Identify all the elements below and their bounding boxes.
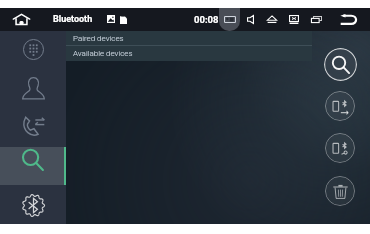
button[interactable]: Paired devices [66,31,312,45]
button[interactable]: Eject [267,15,277,24]
button[interactable]: Home [13,14,30,25]
button[interactable]: Recent apps [311,16,322,23]
button[interactable]: Call history [0,109,66,141]
button[interactable]: Battery status [219,8,240,31]
staticText: Available devices [73,49,133,58]
button[interactable]: Screen off [289,15,299,24]
button[interactable]: Connect device [325,133,355,163]
staticText: Paired devices [73,34,124,43]
button[interactable]: Mute [247,15,254,24]
button[interactable]: Search [0,144,66,176]
staticText: 00:08 [194,14,219,25]
button[interactable]: Contacts [0,72,66,104]
button[interactable]: Search devices [324,48,357,81]
button[interactable]: Delete device [325,176,355,206]
button[interactable]: Available devices [66,46,312,61]
staticText: Bluetooth [53,14,93,25]
button[interactable]: Pair new device [325,91,355,121]
button[interactable]: Back [340,14,357,25]
button[interactable]: Bluetooth settings [0,189,66,221]
button[interactable]: Dial pad [0,33,66,65]
